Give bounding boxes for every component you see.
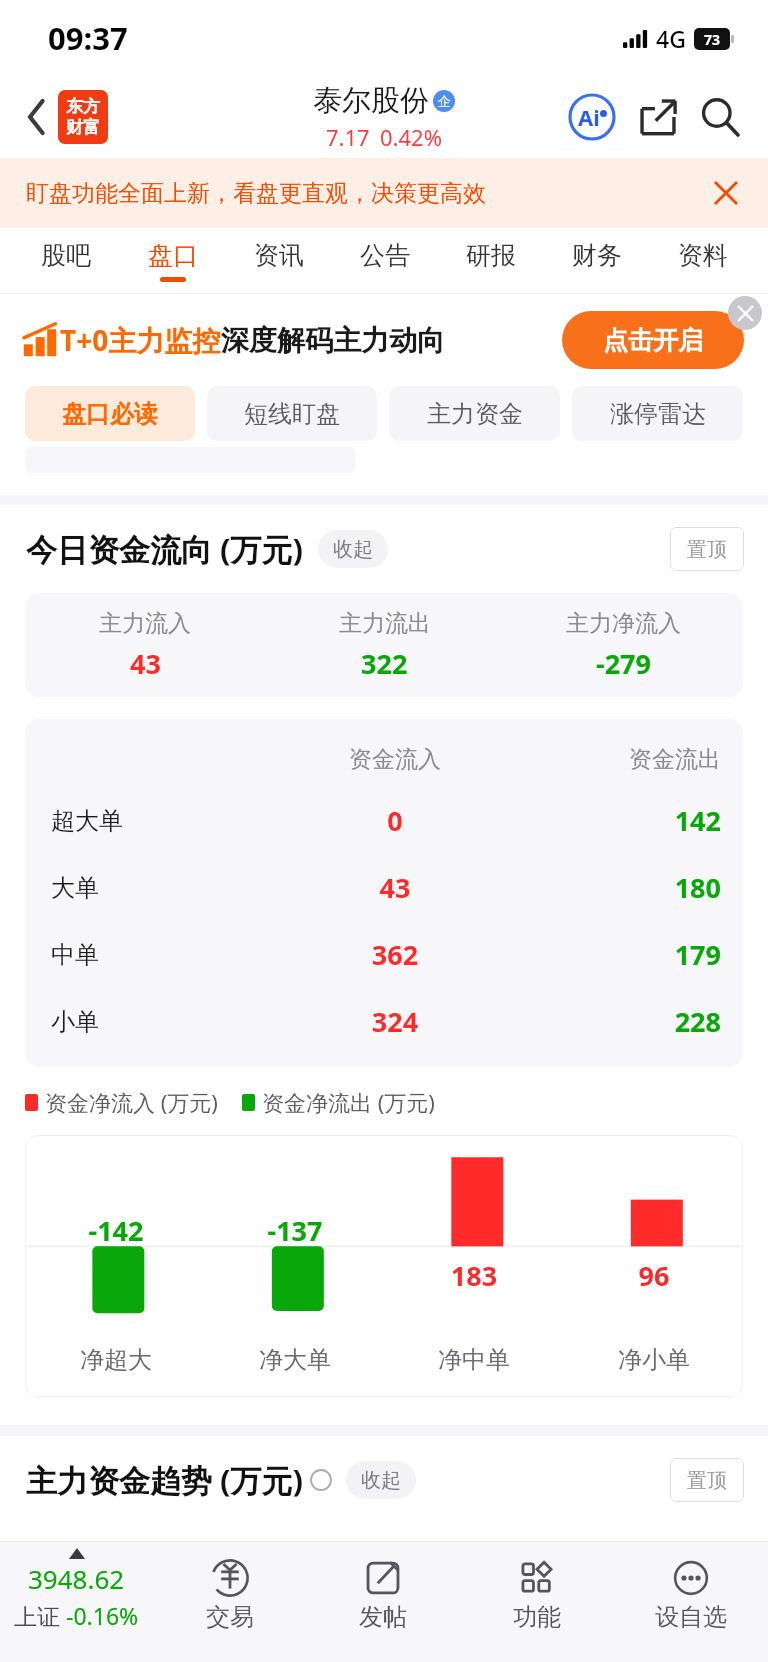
staticText: 上证 [14,1600,66,1631]
button[interactable]: Close promo [728,296,762,330]
button[interactable]: AI assistant [566,91,618,143]
staticText: 09:37 [48,17,128,59]
staticText: 180 [511,869,721,906]
staticText: 盘口必读 [62,399,158,429]
button[interactable]: Close banner [704,171,748,215]
staticText: 泰尔股份 [313,82,429,119]
button[interactable]: 研报 [438,228,544,294]
staticText: Ai [578,102,600,132]
staticText: 企 [438,93,451,109]
staticText: 322 [361,645,408,682]
staticText: 324 [279,1003,511,1040]
staticText: 设自选 [655,1602,727,1632]
staticText: 净大单 [240,1345,350,1375]
button[interactable]: 主力资金 [389,386,560,441]
button[interactable]: 公告 [332,228,438,294]
staticText: 东方 [66,96,100,117]
staticText: 资料 [678,240,728,271]
button[interactable]: 东方 [58,90,108,144]
button[interactable]: Share [632,91,684,143]
button[interactable]: Search [694,91,746,143]
staticText: 43 [279,869,511,906]
staticText: 主力资金趋势 (万元) [26,1459,304,1501]
staticText: 资金流入 [279,745,511,774]
staticText: 研报 [466,240,516,271]
button[interactable]: 置顶 [670,1458,744,1502]
staticText: 小单 [51,1007,279,1037]
staticText: 资金净流出 (万元) [262,1087,435,1117]
staticText: -137 [245,1212,345,1249]
staticText: -0.16% [66,1600,139,1631]
staticText: 96 [604,1257,704,1294]
staticText: 净超大 [61,1345,171,1375]
staticText: 73 [704,30,721,49]
staticText: 主力流入 [99,609,191,638]
button[interactable]: 交易 [153,1542,306,1662]
button[interactable]: 涨停雷达 [572,386,743,441]
button[interactable]: 短线盯盘 [207,386,377,441]
staticText: -279 [596,645,651,682]
button[interactable]: 财务 [544,228,650,294]
staticText: 43 [130,645,161,682]
button[interactable]: 发帖 [306,1542,460,1662]
staticText: 发帖 [359,1602,407,1632]
staticText: 置顶 [687,1468,727,1493]
staticText: 今日资金流向 (万元) [26,528,304,570]
button[interactable]: 设自选 [614,1542,768,1662]
staticText: 0 [279,802,511,839]
staticText: 0.42% [380,122,442,152]
staticText: 盯盘功能全面上新，看盘更直观，决策更高效 [26,179,486,208]
button[interactable]: 3948.62 [0,1542,153,1662]
staticText: 资金净流入 (万元) [45,1087,218,1117]
staticText: 228 [511,1003,721,1040]
staticText: 4G [656,23,686,54]
staticText: T+0主力监控 [60,321,221,359]
staticText: 收起 [333,537,373,562]
staticText: 短线盯盘 [244,399,340,429]
staticText: 股吧 [41,240,91,271]
staticText: 主力流出 [339,609,431,638]
staticText: 交易 [206,1602,254,1632]
button[interactable]: 盯盘功能全面上新，看盘更直观，决策更高效 [0,158,768,228]
button[interactable]: 盘口 [119,228,226,294]
button[interactable]: 收起 [318,530,388,568]
staticText: 功能 [513,1602,561,1632]
staticText: 收起 [361,1468,401,1493]
staticText: 公告 [360,240,410,271]
staticText: 3948.62 [28,1561,125,1596]
staticText: 中单 [51,940,279,970]
button[interactable]: 功能 [460,1542,614,1662]
button[interactable]: 点击开启 [562,311,744,369]
staticText: 7.17 [326,122,370,152]
staticText: 主力净流入 [566,609,681,638]
button[interactable]: 置顶 [670,527,744,571]
staticText: 置顶 [687,537,727,562]
staticText: 盘口 [148,240,198,271]
button[interactable]: Back [14,94,60,140]
staticText: 362 [279,936,511,973]
staticText: 净小单 [599,1345,709,1375]
button[interactable]: 资料 [650,228,756,294]
staticText: 142 [511,802,721,839]
staticText: 财富 [66,117,100,138]
staticText: -142 [66,1212,166,1249]
staticText: 深度解码主力动向 [221,323,445,358]
staticText: 183 [424,1257,524,1294]
staticText: 大单 [51,873,279,903]
staticText: 资金流出 [511,745,721,774]
staticText: 点击开启 [603,325,703,356]
staticText: 资讯 [254,240,304,271]
staticText: 超大单 [51,806,279,836]
button[interactable]: 收起 [346,1461,416,1499]
staticText: 主力资金 [427,399,523,429]
staticText: 涨停雷达 [610,399,706,429]
staticText: 净中单 [419,1345,529,1375]
staticText: 财务 [572,240,622,271]
button[interactable]: 股吧 [12,228,119,294]
button[interactable]: 盘口必读 [25,386,195,441]
staticText: 179 [511,936,721,973]
button[interactable]: 资讯 [226,228,332,294]
